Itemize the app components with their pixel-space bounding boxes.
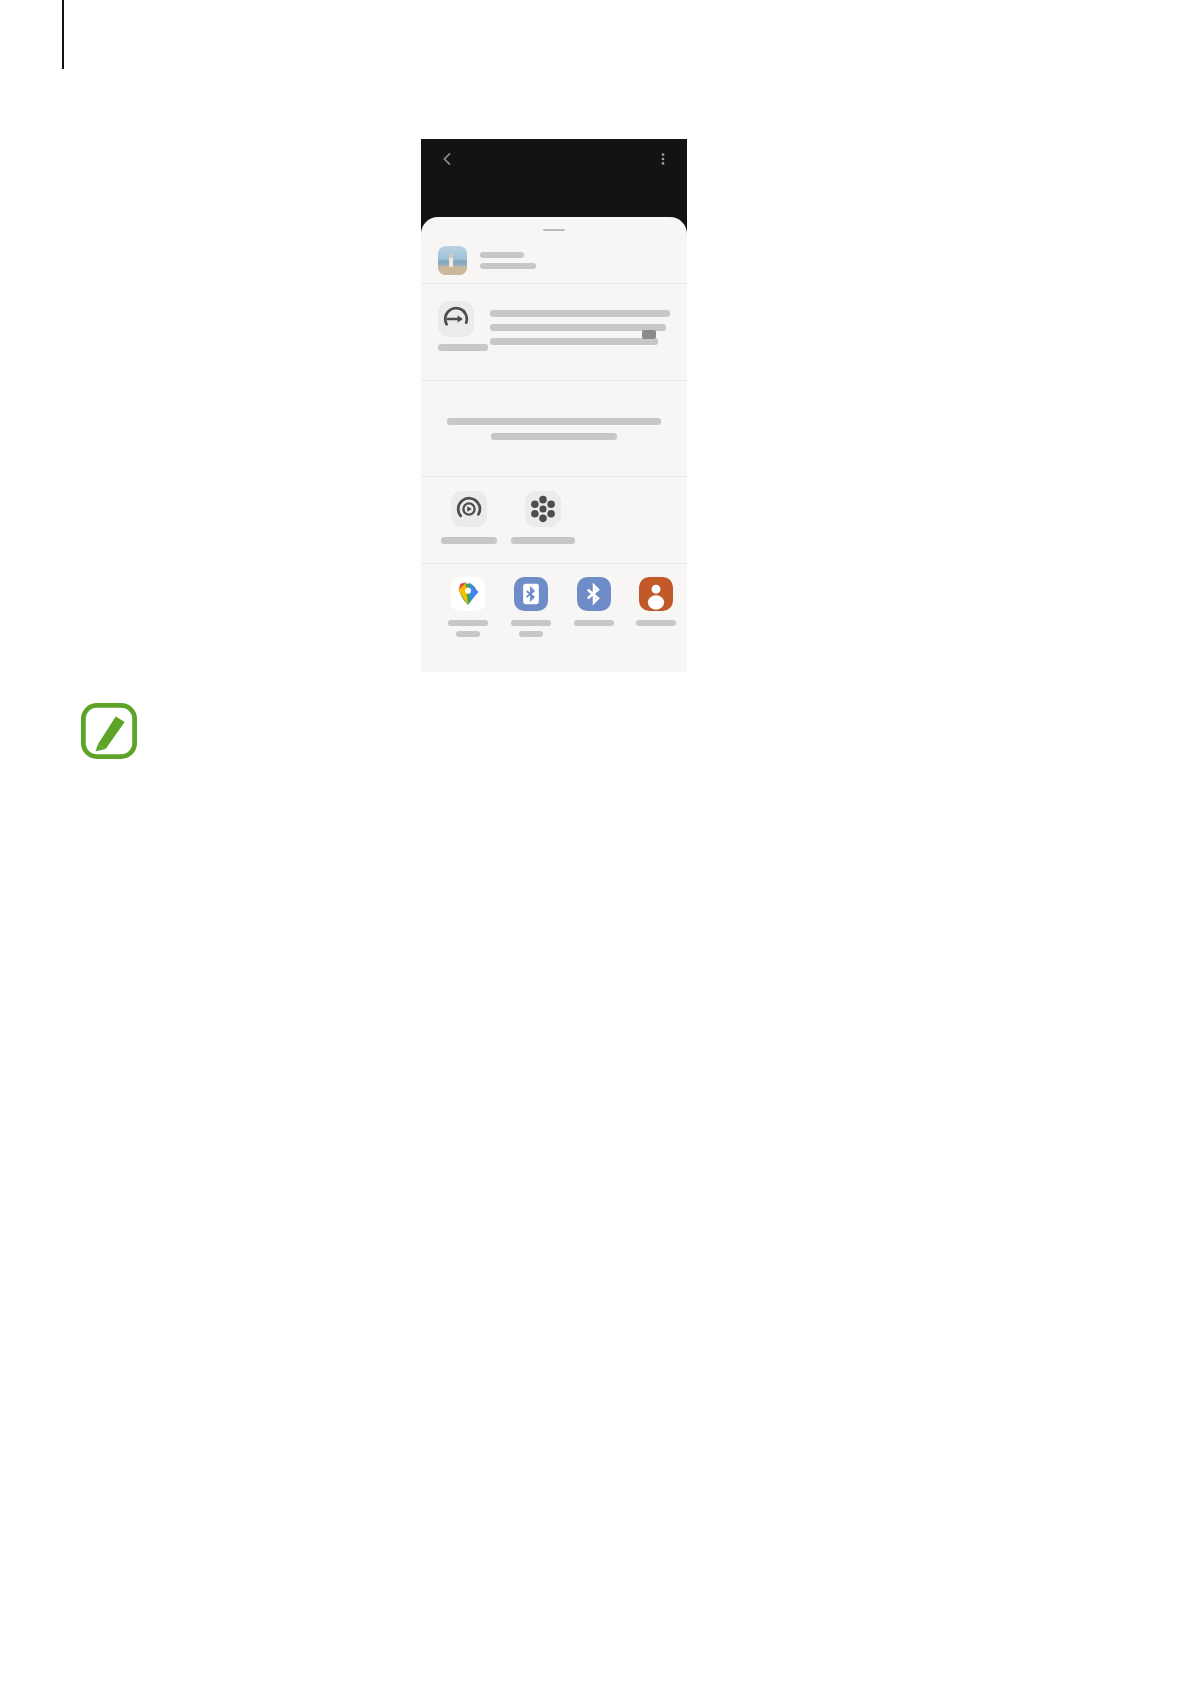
button[interactable]: Bluetooth <box>562 577 625 626</box>
button[interactable]: Quick Share <box>499 577 562 637</box>
button[interactable]: More options <box>650 146 676 172</box>
button[interactable] <box>421 284 687 380</box>
other: Note <box>81 703 137 759</box>
button[interactable]: Shared album <box>511 491 575 544</box>
button[interactable]: Contacts <box>625 577 687 626</box>
button[interactable]: Maps <box>436 577 499 637</box>
button[interactable]: View as slideshow <box>437 491 501 544</box>
button[interactable]: Back <box>434 146 460 172</box>
button[interactable] <box>421 237 687 283</box>
